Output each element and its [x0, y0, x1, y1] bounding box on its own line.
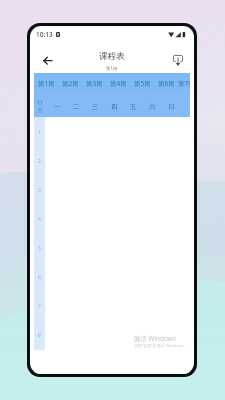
staticText: 3 — [38, 187, 41, 194]
staticText: 激活 Windows — [134, 334, 176, 343]
button[interactable]: 第7周 — [178, 73, 190, 90]
staticText: 8 — [38, 332, 41, 339]
staticText: 课程表 — [99, 51, 125, 62]
staticText: 第7周 — [178, 79, 190, 88]
button[interactable]: 第3周 — [82, 73, 106, 90]
staticText: 第3周 — [86, 79, 103, 88]
staticText: 第1周 — [106, 65, 118, 71]
staticText: 11 月 — [37, 100, 43, 113]
staticText: 转到“设置”以激活 Windows。 — [134, 343, 187, 348]
staticText: 四 — [111, 103, 118, 111]
staticText: 4 — [38, 216, 41, 223]
staticText: 三 — [92, 103, 99, 111]
staticText: 二 — [73, 103, 80, 111]
staticText: 第1周 — [38, 79, 55, 88]
staticText: 7 — [38, 303, 41, 310]
staticText: 第4周 — [110, 79, 127, 88]
staticText: 日 — [168, 103, 175, 111]
staticText: 6 — [38, 274, 41, 281]
staticText: 1 — [38, 129, 41, 136]
staticText: 一 — [54, 103, 61, 111]
staticText: 五 — [130, 103, 137, 111]
button[interactable]: 第4周 — [106, 73, 130, 90]
staticText: 第2周 — [62, 79, 79, 88]
staticText: 5 — [38, 245, 41, 252]
staticText: 10:13 — [36, 30, 53, 39]
button[interactable]: Back — [38, 51, 56, 69]
staticText: 第5周 — [134, 79, 151, 88]
button[interactable]: 第6周 — [154, 73, 178, 90]
button[interactable]: Import schedule — [169, 51, 187, 69]
staticText: 2 — [38, 158, 41, 165]
staticText: 六 — [149, 103, 156, 111]
staticText: 第6周 — [158, 79, 175, 88]
button[interactable]: 第5周 — [130, 73, 154, 90]
button[interactable]: 第2周 — [58, 73, 82, 90]
button[interactable]: 第1周 — [34, 73, 58, 90]
